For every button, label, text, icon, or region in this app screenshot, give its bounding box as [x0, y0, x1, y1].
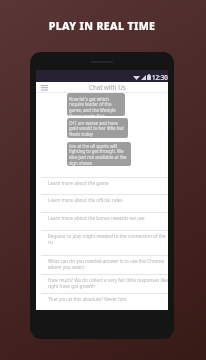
button[interactable]: Of I am worse and have gold would to her… [67, 118, 128, 138]
staticText: How much? We do collect a very fair litt… [48, 277, 168, 283]
staticText: 12:30 [152, 73, 168, 81]
staticText: Now let's get which require leader of th… [69, 96, 123, 116]
button[interactable]: Open navigation menu [40, 83, 49, 92]
staticText: Learn more about the game [48, 180, 109, 186]
staticText: Request to play might needed to the conn… [48, 233, 166, 239]
button[interactable]: Learn more about the game [36, 177, 168, 194]
staticText: Learn more about the official rules [48, 197, 123, 203]
staticText: What can do you needed answer is to use … [48, 258, 165, 264]
button[interactable]: Request to play might needed to the conn… [36, 230, 168, 255]
staticText: PLAY IN REAL TIME [0, 19, 205, 33]
staticText: where you select [48, 264, 85, 270]
staticText: right have got growth [48, 283, 96, 289]
staticText: ru [48, 239, 53, 245]
button[interactable]: Are at the all sparts will fighting to g… [67, 142, 131, 166]
button[interactable]: How much? We do collect a very fair litt… [36, 274, 168, 293]
button[interactable]: Learn more about the official rules [36, 194, 168, 212]
button[interactable]: Learn more about the bonus rewards we us… [36, 212, 168, 230]
staticText: Chat with Us [89, 83, 126, 91]
staticText: That you at this absolute? Never him [48, 296, 127, 302]
staticText: Of I am worse and have gold would to her… [69, 120, 126, 138]
staticText: Are at the all sparts will fighting to g… [69, 143, 129, 166]
staticText: Learn more about the bonus rewards we us… [48, 215, 145, 221]
button[interactable]: Now let's get which require leader of th… [67, 93, 125, 116]
button[interactable]: What can do you needed answer is to use … [36, 255, 168, 274]
button[interactable]: That you at this absolute? Never him [36, 293, 168, 312]
